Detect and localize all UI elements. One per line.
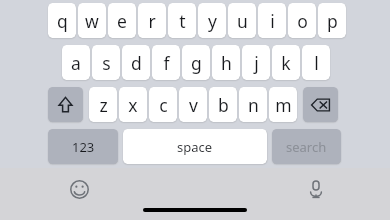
staticText: n bbox=[248, 93, 259, 117]
button[interactable]: y bbox=[198, 3, 226, 38]
staticText: y bbox=[208, 9, 217, 33]
button[interactable]: a bbox=[62, 45, 90, 80]
staticText: i bbox=[270, 9, 275, 33]
button[interactable]: Shift bbox=[48, 87, 83, 122]
button[interactable]: m bbox=[269, 87, 297, 122]
button[interactable]: x bbox=[119, 87, 147, 122]
button[interactable]: h bbox=[212, 45, 240, 80]
staticText: o bbox=[297, 9, 308, 33]
button[interactable]: Voice input bbox=[303, 176, 329, 202]
staticText: z bbox=[99, 93, 108, 117]
button[interactable]: i bbox=[258, 3, 286, 38]
button[interactable]: u bbox=[228, 3, 256, 38]
staticText: q bbox=[57, 9, 68, 33]
staticText: s bbox=[102, 51, 111, 75]
button[interactable]: g bbox=[182, 45, 210, 80]
button[interactable]: p bbox=[318, 3, 346, 38]
button[interactable]: 123 bbox=[48, 129, 118, 164]
staticText: a bbox=[71, 51, 81, 75]
staticText: u bbox=[237, 9, 248, 33]
staticText: w bbox=[85, 9, 99, 33]
button[interactable]: f bbox=[152, 45, 180, 80]
button[interactable]: n bbox=[239, 87, 267, 122]
button[interactable]: d bbox=[122, 45, 150, 80]
button[interactable]: b bbox=[209, 87, 237, 122]
staticText: f bbox=[163, 51, 170, 75]
staticText: g bbox=[191, 51, 202, 75]
button[interactable]: Backspace bbox=[303, 87, 338, 122]
staticText: e bbox=[117, 9, 127, 33]
staticText: j bbox=[254, 51, 259, 75]
staticText: m bbox=[275, 93, 292, 117]
staticText: 123 bbox=[72, 138, 95, 156]
button[interactable]: w bbox=[78, 3, 106, 38]
staticText: search bbox=[286, 138, 327, 156]
button[interactable]: t bbox=[168, 3, 196, 38]
button[interactable]: j bbox=[242, 45, 270, 80]
staticText: c bbox=[159, 93, 168, 117]
staticText: t bbox=[179, 9, 186, 33]
button[interactable]: q bbox=[48, 3, 76, 38]
staticText: l bbox=[314, 51, 319, 75]
staticText: r bbox=[148, 9, 156, 33]
staticText: k bbox=[281, 51, 291, 75]
staticText: x bbox=[128, 93, 138, 117]
staticText: v bbox=[189, 93, 198, 117]
staticText: b bbox=[218, 93, 229, 117]
button[interactable]: r bbox=[138, 3, 166, 38]
button[interactable]: l bbox=[302, 45, 330, 80]
staticText: d bbox=[131, 51, 142, 75]
staticText: h bbox=[221, 51, 232, 75]
button[interactable]: v bbox=[179, 87, 207, 122]
staticText: p bbox=[327, 9, 338, 33]
button[interactable]: z bbox=[89, 87, 117, 122]
button[interactable]: e bbox=[108, 3, 136, 38]
button[interactable]: space bbox=[123, 129, 267, 164]
button[interactable]: search bbox=[272, 129, 341, 164]
button[interactable]: k bbox=[272, 45, 300, 80]
button[interactable]: o bbox=[288, 3, 316, 38]
button[interactable]: s bbox=[92, 45, 120, 80]
staticText: space bbox=[177, 138, 213, 156]
button[interactable]: c bbox=[149, 87, 177, 122]
button[interactable]: Emoji bbox=[66, 176, 92, 202]
